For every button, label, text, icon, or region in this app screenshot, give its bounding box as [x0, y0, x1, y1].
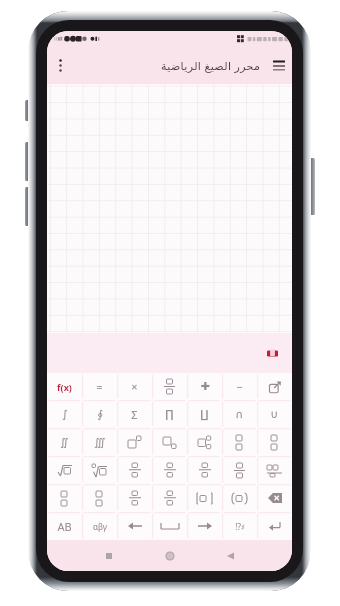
- staticText: !?♯: [235, 521, 245, 532]
- staticText: f(x): [57, 381, 72, 393]
- staticText: ∮: [97, 408, 103, 421]
- staticText: ∪: [270, 408, 279, 421]
- button[interactable]: −: [222, 373, 257, 400]
- button[interactable]: [152, 484, 187, 512]
- button[interactable]: [257, 373, 292, 400]
- button[interactable]: [222, 484, 257, 512]
- button[interactable]: =: [82, 373, 117, 400]
- button[interactable]: [117, 484, 152, 512]
- button[interactable]: [82, 456, 117, 484]
- staticText: ∭: [94, 436, 106, 449]
- button[interactable]: [257, 512, 292, 540]
- staticText: ∬: [60, 436, 69, 449]
- staticText: −: [236, 379, 243, 394]
- button[interactable]: [222, 456, 257, 484]
- staticText: ×: [131, 379, 138, 394]
- button[interactable]: [257, 484, 292, 512]
- button[interactable]: f(x): [47, 373, 82, 400]
- button[interactable]: [117, 456, 152, 484]
- button[interactable]: ∫: [47, 400, 82, 428]
- button[interactable]: [152, 456, 187, 484]
- button[interactable]: [187, 484, 222, 512]
- staticText: ∐: [200, 408, 209, 421]
- button[interactable]: ∐: [187, 400, 222, 428]
- button[interactable]: Σ: [117, 400, 152, 428]
- button[interactable]: [47, 456, 82, 484]
- button[interactable]: [187, 512, 222, 540]
- staticText: ✚: [200, 380, 210, 393]
- button[interactable]: [257, 456, 292, 484]
- button[interactable]: Back: [219, 545, 241, 567]
- button[interactable]: [187, 456, 222, 484]
- button[interactable]: [152, 428, 187, 456]
- button[interactable]: ∭: [82, 428, 117, 456]
- staticText: ∩: [235, 408, 244, 421]
- button[interactable]: [152, 512, 187, 540]
- button[interactable]: Recents: [98, 545, 120, 567]
- staticText: αβγ: [93, 521, 107, 532]
- button[interactable]: [257, 428, 292, 456]
- staticText: ∏: [165, 408, 174, 421]
- button[interactable]: [117, 428, 152, 456]
- button[interactable]: ∩: [222, 400, 257, 428]
- button[interactable]: Home: [159, 545, 181, 567]
- button[interactable]: ∬: [47, 428, 82, 456]
- button[interactable]: ∪: [257, 400, 292, 428]
- button[interactable]: [47, 484, 82, 512]
- staticText: محرر الصيغ الرياضية: [161, 58, 261, 73]
- button[interactable]: ∮: [82, 400, 117, 428]
- staticText: Σ: [131, 407, 138, 422]
- staticText: AB: [57, 519, 72, 534]
- button[interactable]: AB: [47, 512, 82, 540]
- button[interactable]: [152, 373, 187, 400]
- button[interactable]: More options: [47, 46, 73, 84]
- button[interactable]: ×: [117, 373, 152, 400]
- staticText: =: [96, 379, 103, 394]
- button[interactable]: [222, 428, 257, 456]
- button[interactable]: [117, 512, 152, 540]
- button[interactable]: [82, 484, 117, 512]
- button[interactable]: ∏: [152, 400, 187, 428]
- button[interactable]: ✚: [187, 373, 222, 400]
- button[interactable]: [187, 428, 222, 456]
- button[interactable]: !?♯: [222, 512, 257, 540]
- button[interactable]: Hide keyboard: [262, 343, 282, 363]
- button[interactable]: Menu: [266, 46, 292, 84]
- button[interactable]: αβγ: [82, 512, 117, 540]
- staticText: ∫: [62, 408, 68, 421]
